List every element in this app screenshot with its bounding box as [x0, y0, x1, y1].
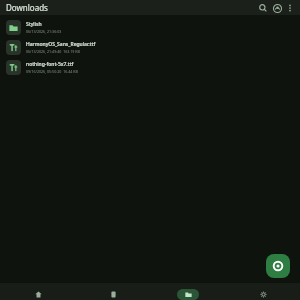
staticText: Stylish: [26, 21, 42, 28]
button[interactable]: More options: [284, 2, 296, 14]
staticText: HarmonyOS_Sans_Regular.ttf: [26, 41, 96, 48]
button[interactable]: Files: [150, 283, 225, 300]
staticText: 06/13/2026, 21:49:40 163.19 KB: [26, 49, 80, 54]
button[interactable]: Home: [0, 283, 75, 300]
button[interactable]: Account: [270, 1, 284, 15]
button[interactable]: Storage: [75, 283, 150, 300]
button[interactable]: Stylish: [0, 17, 300, 37]
button[interactable]: Search: [256, 1, 270, 15]
button[interactable]: Add: [266, 254, 290, 278]
button[interactable]: HarmonyOS_Sans_Regular.ttf: [0, 37, 300, 57]
button[interactable]: Settings: [225, 283, 300, 300]
button[interactable]: nothing-font-5x7.ttf: [0, 57, 300, 77]
staticText: 06/13/2026, 21:36:03: [26, 29, 62, 34]
staticText: nothing-font-5x7.ttf: [26, 61, 74, 68]
staticText: 09/16/2026, 05:50:20 16.44 KB: [26, 69, 78, 74]
staticText: Downloads: [6, 2, 48, 13]
